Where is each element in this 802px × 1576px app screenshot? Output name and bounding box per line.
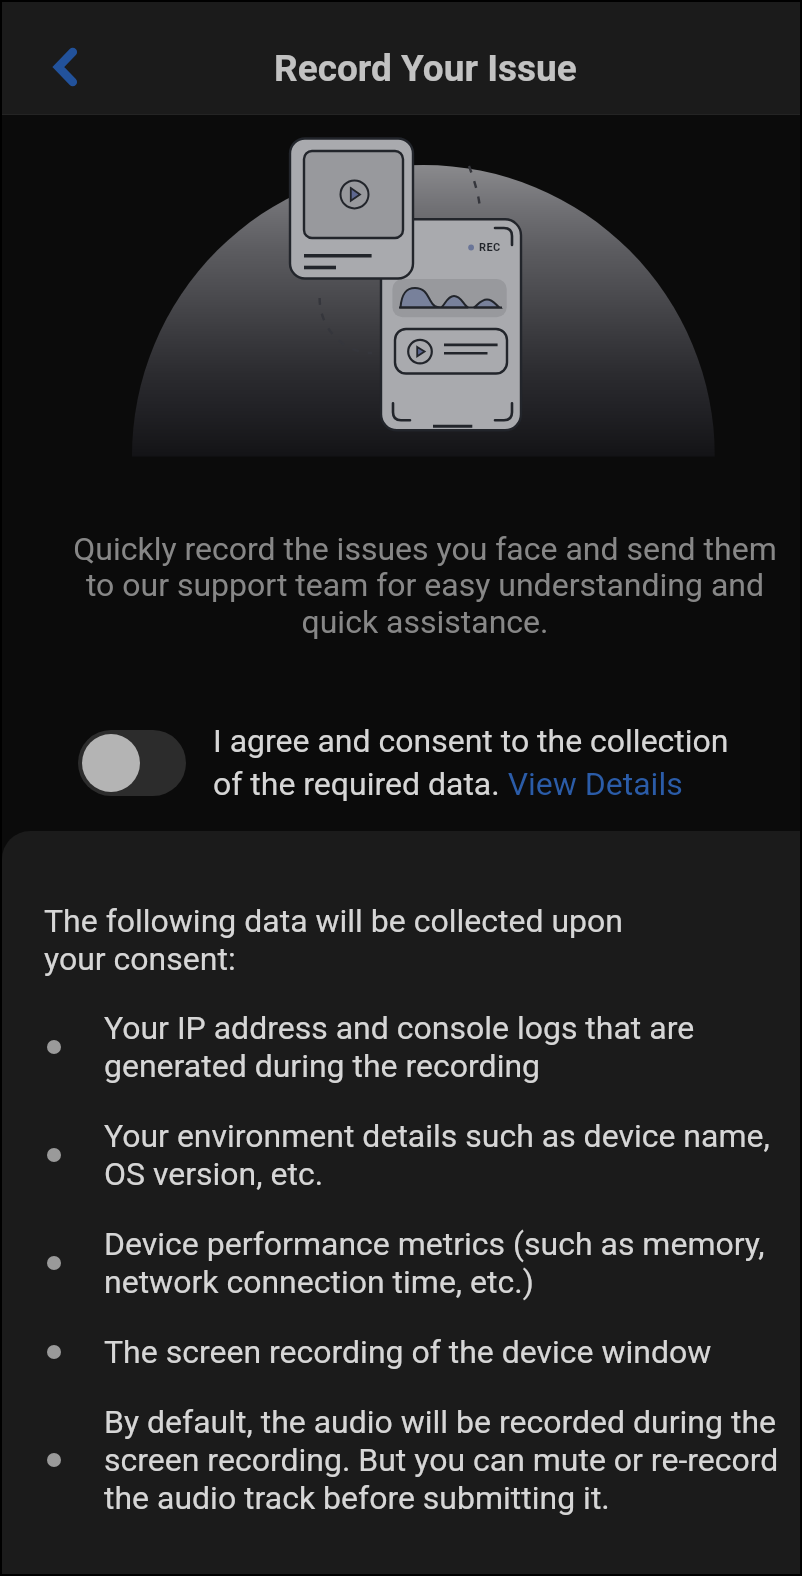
button[interactable]: Consent toggle [78,730,186,796]
staticText: The screen recording of the device windo… [104,1333,794,1371]
staticText: Device performance metrics (such as memo… [104,1225,794,1301]
staticText: Your IP address and console logs that ar… [104,1009,794,1085]
staticText: Quickly record the issues you face and s… [69,530,781,641]
staticText: Record Your Issue [274,47,577,90]
staticText: By default, the audio will be recorded d… [104,1403,794,1517]
button[interactable]: The screen recording of the device windo… [44,1333,802,1371]
button[interactable]: I agree and consent to the collection of… [213,722,753,803]
button[interactable]: Device performance metrics (such as memo… [44,1225,802,1301]
staticText: REC [479,241,501,254]
staticText: The following data will be collected upo… [44,902,644,978]
button[interactable]: Back [28,35,92,99]
button[interactable]: Your environment details such as device … [44,1117,802,1193]
button[interactable]: By default, the audio will be recorded d… [44,1403,802,1517]
staticText: Your environment details such as device … [104,1117,794,1193]
button[interactable]: Your IP address and console logs that ar… [44,1009,802,1085]
